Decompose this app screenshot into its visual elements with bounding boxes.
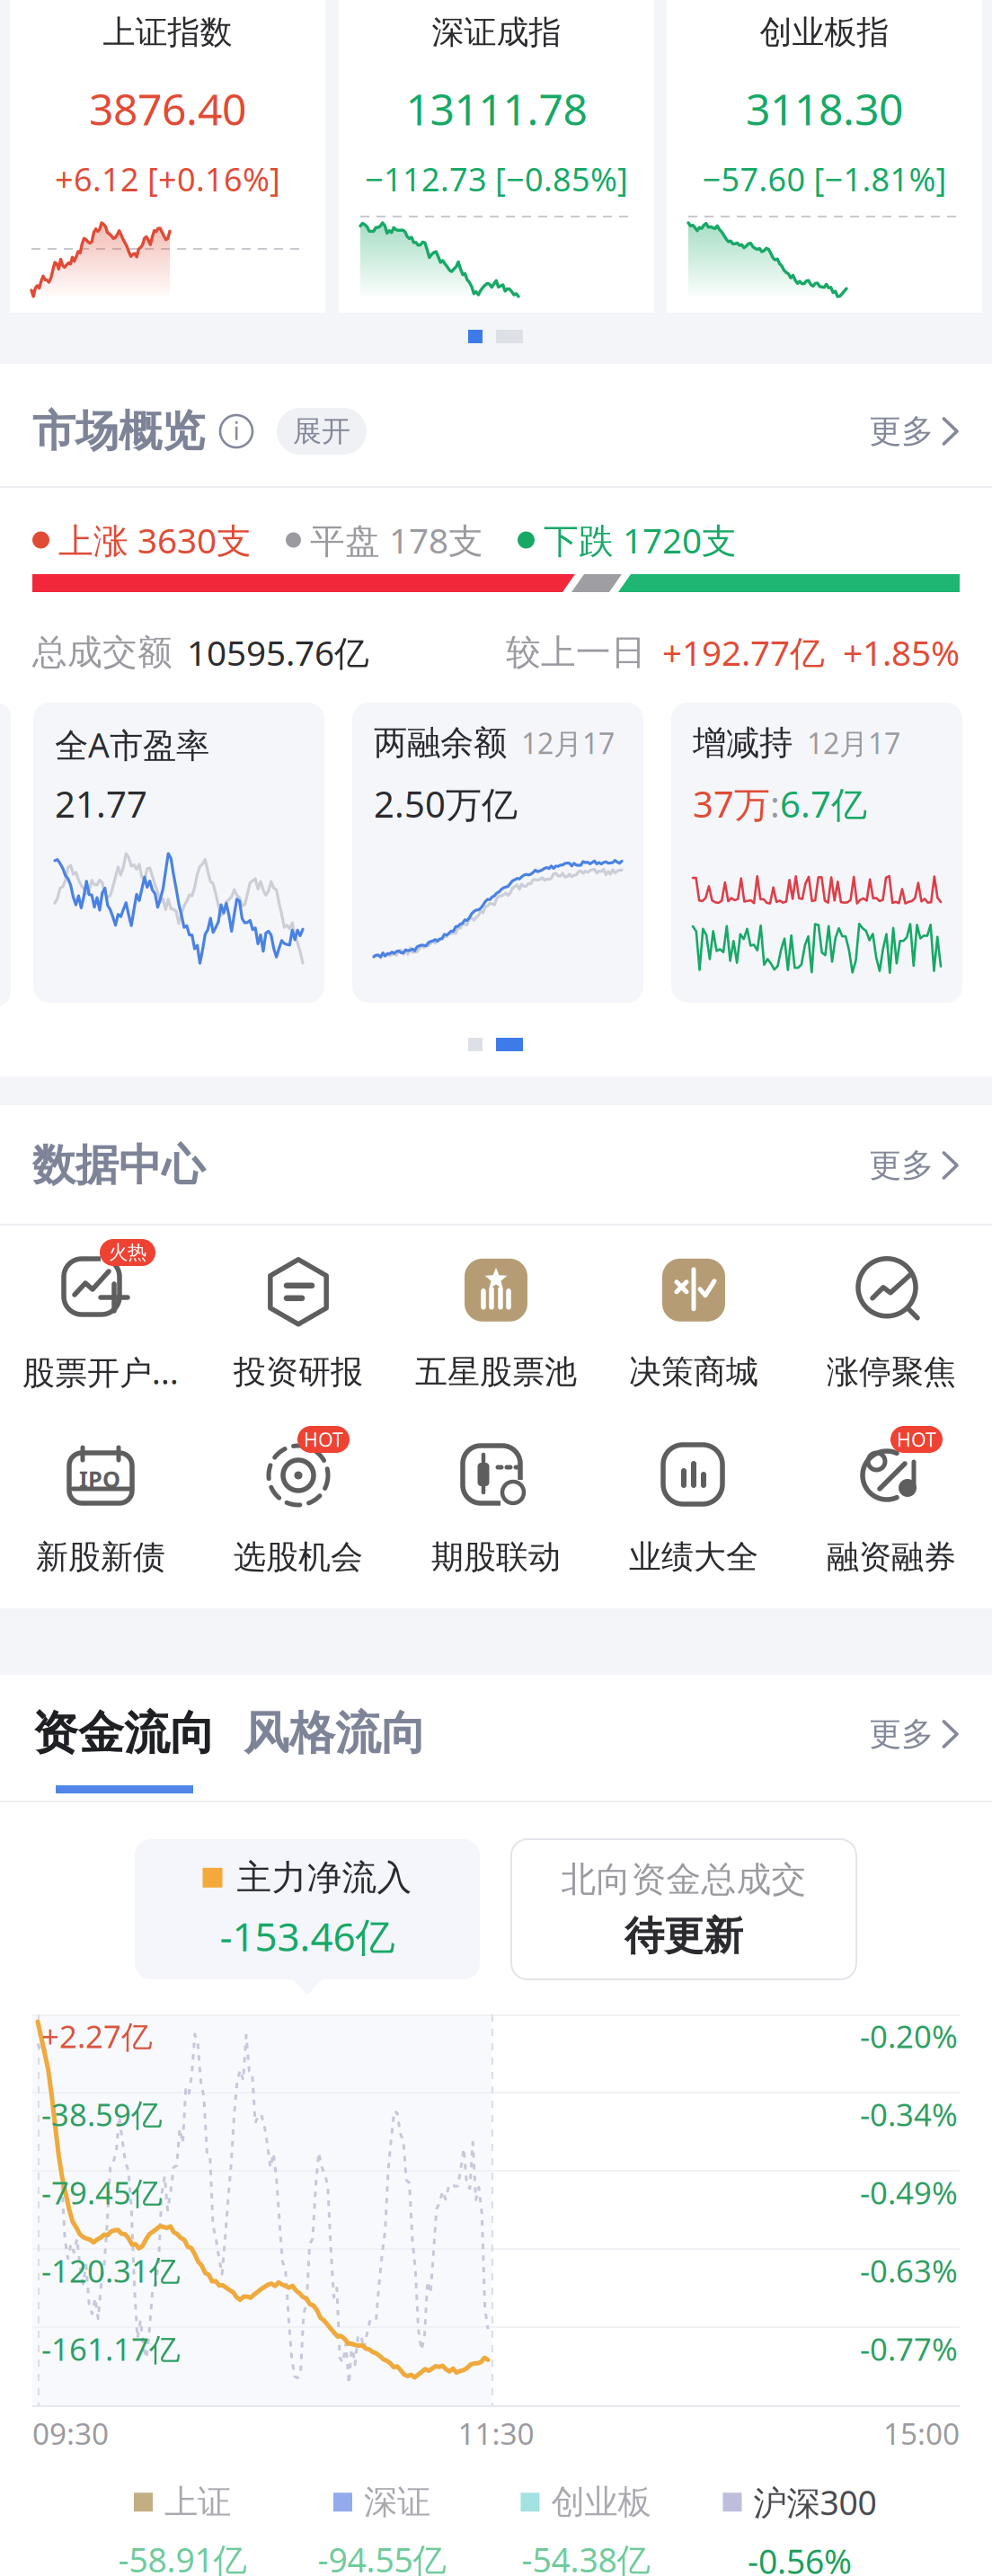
button[interactable]: 创业板指 [667, 0, 982, 313]
button[interactable]: 上证指数 [10, 0, 325, 313]
staticText: -79.45亿 [41, 2172, 163, 2213]
staticText: 13111.78 [406, 80, 587, 137]
button[interactable]: 更多 [869, 1707, 960, 1761]
button[interactable]: 展开 [277, 408, 367, 455]
button[interactable]: 更多 [869, 404, 960, 458]
button[interactable]: 涨停聚焦 [793, 1239, 990, 1392]
button[interactable]: 投资研报 [199, 1239, 397, 1392]
staticText: +1.85% [843, 629, 960, 675]
staticText: i [233, 414, 239, 447]
staticText: 待更新 [624, 1912, 743, 1960]
staticText: -0.77% [860, 2328, 958, 2369]
staticText: -0.34% [860, 2094, 958, 2135]
staticText: 上证 [164, 2482, 231, 2523]
staticText: 12月17 [807, 724, 900, 762]
staticText: 融资融券 [827, 1537, 956, 1577]
staticText: -161.17亿 [41, 2328, 181, 2369]
staticText: +6.12 [+0.16%] [55, 157, 280, 200]
staticText: 展开 [293, 414, 350, 449]
staticText: 上涨 3630支 [58, 517, 252, 563]
staticText: +192.77亿 [662, 629, 825, 675]
staticText: 平盘 178支 [310, 517, 483, 563]
staticText: 2.50万亿 [374, 780, 518, 828]
staticText: 期股联动 [431, 1537, 561, 1577]
staticText: 6.7亿 [780, 780, 867, 828]
button[interactable]: 决策商城 [595, 1239, 793, 1392]
button[interactable]: 火热 [2, 1237, 199, 1393]
button[interactable]: 期股联动 [397, 1424, 595, 1577]
button[interactable]: 全A市盈率 [33, 703, 324, 1003]
staticText: 增减持 [693, 722, 793, 764]
staticText: 深证成指 [432, 12, 561, 52]
staticText: 更多 [869, 1714, 934, 1754]
staticText: 创业板 [551, 2482, 651, 2523]
staticText: 五星股票池 [415, 1352, 577, 1392]
staticText: 较上一日 [506, 631, 646, 674]
staticText: -0.56% [748, 2539, 852, 2576]
button[interactable]: 沪深300 [690, 2480, 909, 2576]
staticText: 3876.40 [89, 80, 246, 137]
staticText: 37万 [693, 780, 770, 828]
staticText: 创业板指 [760, 12, 889, 52]
staticText: 下跌 1720支 [544, 517, 737, 563]
staticText: 新股新债 [36, 1537, 165, 1577]
staticText: : [770, 780, 780, 828]
staticText: 业绩大全 [629, 1537, 758, 1577]
button[interactable]: HOT [199, 1424, 397, 1577]
button[interactable]: 创业板 [482, 2482, 690, 2576]
button[interactable]: HOT [793, 1424, 990, 1577]
button[interactable]: 五星股票池 [397, 1239, 595, 1392]
staticText: -0.49% [860, 2172, 958, 2213]
button[interactable]: 北向资金总成交 [511, 1839, 856, 1979]
staticText: 投资研报 [234, 1352, 363, 1392]
staticText: HOT [304, 1427, 343, 1452]
staticText: 资金流向 [32, 1705, 216, 1761]
staticText: 10595.76亿 [187, 629, 369, 675]
staticText: 数据中心 [32, 1139, 205, 1192]
staticText: 股票开户... [22, 1350, 179, 1393]
staticText: 北向资金总成交 [561, 1858, 806, 1901]
staticText: 更多 [869, 1145, 934, 1185]
staticText: -120.31亿 [41, 2250, 181, 2291]
button[interactable]: 深证成指 [339, 0, 654, 313]
staticText: 总成交额 [32, 631, 173, 674]
staticText: −57.60 [−1.81%] [702, 157, 947, 200]
staticText: 决策商城 [629, 1352, 758, 1392]
button[interactable]: 资金流向 [32, 1705, 216, 1761]
staticText: 3118.30 [746, 80, 903, 137]
staticText: 深证 [364, 2482, 430, 2523]
button[interactable]: 更多 [869, 1138, 960, 1192]
staticText: +2.27亿 [41, 2015, 153, 2057]
staticText: −112.73 [−0.85%] [365, 157, 628, 200]
button[interactable]: 风格流向 [244, 1705, 427, 1761]
button[interactable]: 业绩大全 [595, 1424, 793, 1577]
button[interactable]: 深证 [282, 2482, 482, 2576]
staticText: 沪深300 [753, 2480, 877, 2524]
staticText: 选股机会 [234, 1537, 363, 1577]
staticText: 火热 [109, 1241, 146, 1264]
button[interactable]: 增减持 [671, 703, 962, 1003]
button[interactable]: 上证 [83, 2482, 282, 2576]
staticText: 上证指数 [103, 12, 232, 52]
button[interactable]: 两融余额 [352, 703, 643, 1003]
staticText: 全A市盈率 [55, 722, 209, 767]
staticText: -94.55亿 [318, 2537, 446, 2576]
staticText: HOT [897, 1427, 936, 1452]
staticText: IPO [79, 1464, 120, 1494]
staticText: 涨停聚焦 [827, 1352, 956, 1392]
staticText: 11:30 [458, 2413, 534, 2453]
staticText: 市场概览 [32, 405, 205, 458]
staticText: -54.38亿 [522, 2537, 650, 2576]
staticText: 12月17 [521, 724, 615, 762]
staticText: -38.59亿 [41, 2094, 163, 2135]
staticText: 21.77 [55, 780, 147, 828]
staticText: -58.91亿 [118, 2537, 247, 2576]
staticText: 09:30 [32, 2413, 109, 2453]
button[interactable]: IPO [2, 1424, 199, 1577]
staticText: -0.63% [860, 2250, 958, 2291]
staticText: 风格流向 [244, 1705, 427, 1761]
staticText: -0.20% [860, 2015, 958, 2057]
button[interactable]: 主力净流入 [135, 1839, 480, 1979]
staticText: 两融余额 [374, 722, 507, 764]
staticText: 主力净流入 [237, 1856, 412, 1899]
